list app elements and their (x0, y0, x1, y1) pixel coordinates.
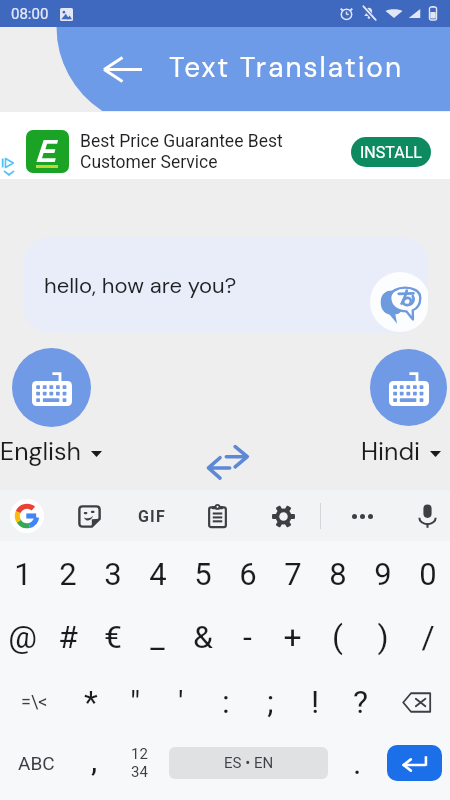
staticText: , (91, 741, 98, 779)
button[interactable]: @ (0, 606, 45, 671)
button[interactable]: GIF (132, 496, 172, 536)
staticText: + (283, 618, 302, 656)
staticText: hello, how are you? (44, 271, 237, 300)
staticText: @ (8, 618, 37, 656)
button[interactable]: hello, how are you? (23, 237, 428, 333)
button[interactable]: Translate (370, 272, 428, 332)
button[interactable]: 5 (180, 541, 225, 606)
button[interactable]: ( (315, 606, 360, 671)
button[interactable]: Stickers (69, 496, 109, 536)
button[interactable]: : (203, 671, 248, 736)
button[interactable]: 3 (90, 541, 135, 606)
staticText: ; (267, 683, 274, 721)
button[interactable]: 2 (45, 541, 90, 606)
staticText: _ (150, 618, 165, 656)
button[interactable]: . (328, 736, 387, 800)
button[interactable]: Enter (387, 745, 442, 781)
staticText: € (104, 618, 122, 656)
button[interactable]: ' (158, 671, 203, 736)
button[interactable]: # (45, 606, 90, 671)
staticText: 2 (59, 556, 77, 592)
staticText: : (222, 683, 230, 721)
staticText: * (84, 683, 98, 721)
button[interactable]: 6 (225, 541, 270, 606)
staticText: Best Price Guarantee Best (80, 131, 283, 152)
staticText: # (58, 618, 78, 656)
staticText: ( (332, 618, 343, 656)
staticText: " (130, 683, 141, 721)
staticText: 08:00 (11, 5, 49, 23)
staticText: - (243, 618, 252, 656)
staticText: ? (353, 683, 369, 721)
staticText: English (0, 435, 81, 468)
staticText: & (193, 618, 213, 656)
button[interactable]: Backspace (383, 671, 450, 736)
button[interactable]: INSTALL (351, 137, 431, 167)
staticText: 5 (194, 556, 212, 592)
button[interactable]: - (225, 606, 270, 671)
button[interactable]: " (113, 671, 158, 736)
button[interactable]: 0 (405, 541, 450, 606)
button[interactable]: / (405, 606, 450, 671)
staticText: 34 (131, 763, 148, 781)
button[interactable]: ABC (0, 736, 72, 800)
staticText: 6 (239, 556, 257, 592)
staticText: ' (178, 683, 184, 721)
button[interactable]: _ (135, 606, 180, 671)
button[interactable]: & (180, 606, 225, 671)
button[interactable]: 9 (360, 541, 405, 606)
staticText: 7 (284, 556, 302, 592)
button[interactable]: ? (338, 671, 383, 736)
staticText: 4 (149, 556, 167, 592)
button[interactable]: Clipboard (197, 496, 237, 536)
button[interactable]: Google (7, 496, 47, 536)
button[interactable]: € (90, 606, 135, 671)
button[interactable]: Back (95, 42, 149, 96)
button[interactable]: =\< (0, 671, 68, 736)
button[interactable]: + (270, 606, 315, 671)
button[interactable]: English (0, 435, 102, 468)
button[interactable]: Hindi (361, 435, 441, 468)
button[interactable]: Hindi keyboard (370, 349, 447, 426)
staticText: ABC (18, 752, 55, 774)
staticText: 1 (14, 556, 32, 592)
staticText: Text Translation (169, 49, 404, 85)
button[interactable]: * (68, 671, 113, 736)
staticText: 8 (329, 556, 347, 592)
staticText: . (353, 744, 362, 782)
button[interactable]: ) (360, 606, 405, 671)
staticText: / (421, 618, 435, 656)
staticText: ES • EN (224, 754, 274, 772)
button[interactable]: 4 (135, 541, 180, 606)
staticText: INSTALL (360, 143, 422, 162)
button[interactable]: 7 (270, 541, 315, 606)
button[interactable]: 1 (0, 541, 45, 606)
staticText: Customer Service (80, 152, 218, 173)
staticText: 9 (374, 556, 392, 592)
staticText: GIF (138, 507, 166, 526)
staticText: Hindi (361, 435, 421, 468)
button[interactable]: ! (293, 671, 338, 736)
button[interactable]: Voice input (407, 496, 447, 536)
staticText: =\< (21, 691, 48, 712)
staticText: 3 (104, 556, 122, 592)
button[interactable]: 12 (116, 736, 162, 800)
button[interactable]: ; (248, 671, 293, 736)
staticText: ) (377, 618, 389, 656)
button[interactable]: Swap languages (199, 433, 257, 491)
staticText: ! (311, 683, 320, 721)
button[interactable]: Settings (263, 496, 303, 536)
staticText: 12 (131, 745, 148, 763)
button[interactable]: English keyboard (12, 348, 91, 427)
button[interactable]: , (72, 736, 116, 800)
button[interactable]: ES • EN (169, 747, 328, 779)
button[interactable]: More options (342, 496, 382, 536)
button[interactable]: 8 (315, 541, 360, 606)
staticText: 0 (419, 556, 437, 592)
